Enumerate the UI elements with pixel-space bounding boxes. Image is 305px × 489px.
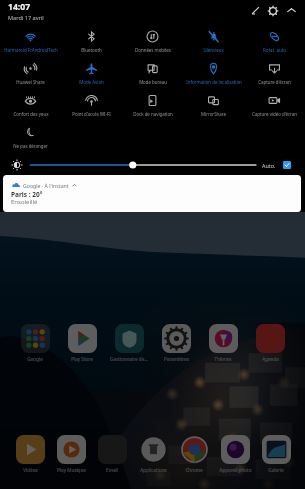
button[interactable]: Chrome [172, 435, 216, 473]
staticText: Play Store [71, 356, 93, 362]
button[interactable]: Galerie [254, 435, 298, 473]
staticText: Huawei Share [16, 79, 45, 85]
staticText: Dock de navigation [133, 111, 173, 117]
button[interactable]: Capture d'écran [244, 58, 305, 90]
staticText: Données mobiles [135, 47, 171, 53]
button[interactable]: Confort des yeux [0, 90, 61, 122]
staticText: Information de localisation [186, 79, 242, 85]
staticText: Confort des yeux [13, 111, 49, 117]
staticText: Rotat. auto [263, 47, 286, 53]
staticText: Capture d'écran [258, 79, 291, 85]
staticText: Silencieux [203, 47, 224, 53]
staticText: Ensoleillé [11, 198, 38, 206]
button[interactable]: Edit [247, 2, 264, 19]
staticText: Capture vidéo d'écran [252, 111, 297, 117]
button[interactable]: Ne pas déranger [0, 122, 61, 154]
button[interactable]: Mode bureau [122, 58, 183, 90]
button[interactable]: Agenda [248, 324, 292, 362]
staticText: Agenda [262, 356, 279, 362]
staticText: Appareil photo [219, 467, 252, 473]
button[interactable]: Information de localisation [183, 58, 244, 90]
button[interactable]: Auto. [262, 158, 291, 172]
button[interactable]: Brightness [28, 158, 258, 172]
button[interactable]: Données mobiles [122, 26, 183, 58]
staticText: Auto. [262, 162, 276, 169]
staticText: Google [27, 356, 43, 362]
button[interactable]: Dock de navigation [122, 90, 183, 122]
staticText: Ne pas déranger [13, 143, 48, 149]
button[interactable]: Email [90, 435, 134, 473]
button[interactable]: Play Musique [49, 435, 93, 473]
staticText: Vidéos [23, 467, 38, 473]
button[interactable]: Collapse [283, 2, 300, 19]
staticText: Mardi 17 avril [8, 14, 44, 22]
button[interactable]: Google [13, 324, 57, 362]
staticText: Point d'accès WI-FI [72, 111, 111, 117]
staticText: Applications [140, 467, 167, 473]
staticText: Galerie [268, 467, 284, 473]
button[interactable]: Appareil photo [213, 435, 257, 473]
button[interactable]: Thèmes [201, 324, 245, 362]
button[interactable]: Capture vidéo d'écran [244, 90, 305, 122]
button[interactable]: Harmaroid FrAndroidTech [0, 26, 61, 58]
button[interactable]: Applications [131, 435, 175, 473]
staticText: Mode bureau [139, 79, 167, 85]
button[interactable]: Vidéos [8, 435, 52, 473]
staticText: Google · À l'instant [23, 182, 69, 189]
staticText: Thèmes [214, 356, 232, 362]
button[interactable]: Bluetooth [61, 26, 122, 58]
staticText: Play Musique [57, 467, 86, 473]
button[interactable]: Huawei Share [0, 58, 61, 90]
staticText: 14:07 [8, 1, 31, 13]
button[interactable]: Silencieux [183, 26, 244, 58]
staticText: Mode Avion [79, 79, 104, 85]
button[interactable]: Gestionnaire de… [107, 324, 151, 362]
button[interactable]: Brightness mode [10, 158, 24, 172]
staticText: Chrome [185, 467, 203, 473]
button[interactable]: Point d'accès WI-FI [61, 90, 122, 122]
staticText: Bluetooth [81, 47, 102, 53]
staticText: MirrorShare [201, 111, 226, 117]
button[interactable]: Mode Avion [61, 58, 122, 90]
staticText: Gestionnaire de… [110, 356, 148, 362]
staticText: Email [106, 467, 118, 473]
staticText: Paramètres [164, 356, 189, 362]
button[interactable]: Paramètres [154, 324, 198, 362]
button[interactable]: Rotat. auto [244, 26, 305, 58]
button[interactable]: MirrorShare [183, 90, 244, 122]
button[interactable]: Settings [264, 2, 281, 19]
staticText: Paris : 20° [11, 190, 43, 199]
staticText: Harmaroid FrAndroidTech [4, 47, 58, 53]
button[interactable]: Google · À l'instant [3, 175, 301, 212]
button[interactable]: Play Store [60, 324, 104, 362]
